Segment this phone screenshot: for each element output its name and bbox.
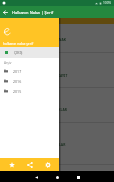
staticText: OLAGANUSTU MECLIS TOPLANTI KAYIT [4, 73, 68, 77]
staticText: halkanın nabzı şerif [3, 41, 34, 45]
staticText: 2017 [13, 69, 22, 74]
button[interactable]: 2016 [0, 76, 59, 86]
staticText: Halkanın Nabzı | Şerif [12, 10, 54, 15]
staticText: BELEDIYE MECLIS TOPLANTI TUTANAK [4, 37, 66, 41]
button[interactable]: 2015 [0, 86, 59, 96]
button[interactable]: Share [23, 158, 36, 171]
staticText: 2015 [13, 89, 22, 94]
staticText: 100% [103, 1, 112, 5]
staticText: HALK GUNU TOPLANTISI TUTANAKLAR [4, 107, 67, 111]
staticText: KOMISYON TOPLANTISI TUTANAKLAR [4, 142, 66, 146]
button[interactable]: Home [52, 172, 62, 182]
button[interactable]: Recent apps [73, 172, 83, 182]
button[interactable]: Navigate up [0, 7, 11, 18]
button[interactable]: Back [31, 172, 41, 182]
button[interactable]: 2017 [0, 66, 59, 76]
staticText: 2016 [13, 79, 22, 84]
button[interactable]: Settings [41, 158, 54, 171]
button[interactable]: ÇIKIŞ [0, 47, 59, 58]
staticText: ÇIKIŞ [14, 50, 23, 55]
button[interactable]: Favorites [5, 158, 18, 171]
staticText: Arşiv [4, 61, 12, 65]
